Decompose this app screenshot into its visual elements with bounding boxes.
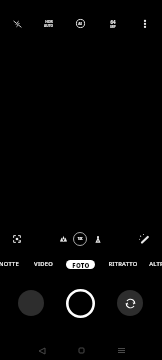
button[interactable]: Macro mode bbox=[8, 230, 26, 248]
staticText: HDR bbox=[45, 19, 53, 24]
button[interactable]: Take photo bbox=[64, 287, 97, 320]
button[interactable]: Switch camera bbox=[117, 290, 143, 316]
button[interactable]: Home bbox=[70, 339, 92, 360]
button[interactable]: Recent apps bbox=[110, 339, 132, 360]
staticText: MP bbox=[110, 24, 116, 29]
staticText: 64 bbox=[110, 19, 116, 25]
staticText: FOTO bbox=[72, 261, 90, 269]
button[interactable]: Gallery bbox=[18, 290, 44, 316]
staticText: ALTRO bbox=[149, 260, 162, 268]
button[interactable]: More options bbox=[134, 13, 156, 35]
button[interactable]: HDR auto bbox=[37, 12, 59, 34]
staticText: AUTO bbox=[44, 24, 53, 28]
button[interactable]: Flash off bbox=[6, 13, 28, 35]
button[interactable]: Filters bbox=[135, 230, 153, 248]
button[interactable]: VIDEO bbox=[21, 259, 65, 269]
button[interactable]: NOTTE bbox=[0, 259, 31, 269]
button[interactable]: ALTRO bbox=[137, 259, 162, 269]
button[interactable]: RITRATTO bbox=[101, 259, 145, 269]
button[interactable]: Ultra wide lens bbox=[55, 230, 71, 246]
staticText: VIDEO bbox=[34, 260, 53, 268]
staticText: AI bbox=[78, 21, 82, 26]
button[interactable]: Resolution 64 MP bbox=[102, 13, 124, 35]
staticText: 1X bbox=[77, 236, 83, 242]
button[interactable]: AI scene detection bbox=[69, 12, 91, 34]
button[interactable]: 1X bbox=[73, 232, 87, 246]
button[interactable]: FOTO bbox=[66, 260, 95, 269]
staticText: RITRATTO bbox=[108, 260, 138, 268]
button[interactable]: Telephoto lens bbox=[90, 231, 106, 247]
staticText: NOTTE bbox=[0, 260, 19, 268]
button[interactable]: Back bbox=[31, 340, 53, 360]
